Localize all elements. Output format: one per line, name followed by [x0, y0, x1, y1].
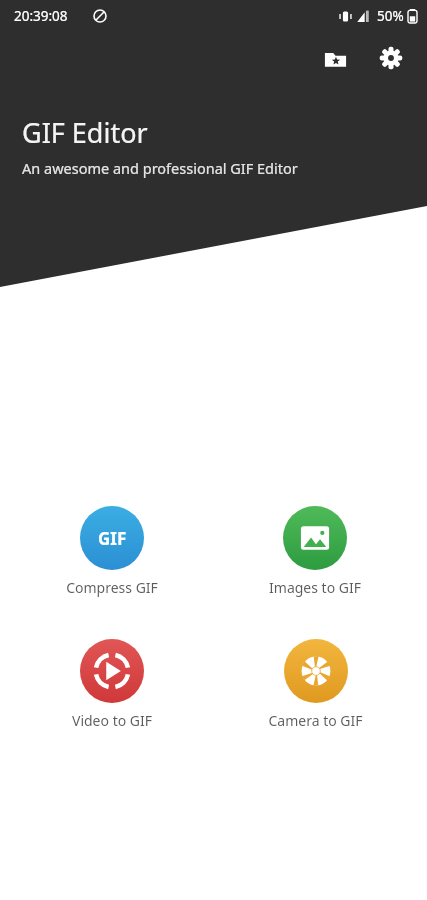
button[interactable]: Settings [367, 34, 415, 82]
staticText: GIF [98, 527, 127, 550]
button[interactable]: Camera to GIF [223, 629, 407, 740]
button[interactable]: Images to GIF [223, 496, 407, 607]
staticText: Camera to GIF [268, 711, 363, 730]
staticText: GIF Editor [22, 114, 148, 151]
button[interactable]: Video to GIF [20, 629, 204, 740]
staticText: Compress GIF [66, 578, 158, 597]
staticText: 20:39:08 [14, 7, 68, 25]
staticText: Images to GIF [269, 578, 361, 597]
button[interactable]: Saved GIFs [311, 34, 359, 82]
button[interactable]: GIF [20, 496, 204, 607]
staticText: Video to GIF [72, 711, 152, 730]
staticText: 50% [377, 7, 404, 25]
staticText: An awesome and professional GIF Editor [22, 158, 298, 178]
